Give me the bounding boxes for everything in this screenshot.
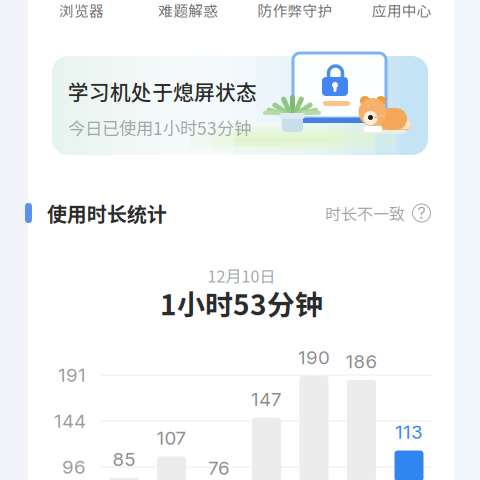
button[interactable]: 防作弊守护 bbox=[241, 0, 348, 21]
staticText: 147 bbox=[251, 388, 282, 410]
staticText: ? bbox=[417, 203, 425, 223]
staticText: 85 bbox=[112, 448, 135, 470]
staticText: 191 bbox=[58, 364, 86, 386]
staticText: 144 bbox=[54, 410, 86, 432]
staticText: 浏览器 bbox=[59, 0, 104, 21]
button[interactable]: 时长不一致 bbox=[325, 201, 431, 225]
button[interactable]: 应用中心 bbox=[348, 0, 455, 21]
staticText: 防作弊守护 bbox=[257, 0, 332, 21]
staticText: 1小时53分钟 bbox=[160, 283, 323, 323]
button[interactable]: 难题解惑 bbox=[135, 0, 242, 21]
staticText: 今日已使用1小时53分钟 bbox=[68, 115, 251, 140]
staticText: 96 bbox=[62, 456, 86, 478]
staticText: 186 bbox=[345, 350, 377, 373]
staticText: 难题解惑 bbox=[158, 0, 218, 21]
staticText: 应用中心 bbox=[372, 0, 432, 21]
staticText: 76 bbox=[208, 457, 230, 479]
staticText: 107 bbox=[156, 427, 186, 449]
staticText: 113 bbox=[395, 421, 423, 443]
staticText: 12月10日 bbox=[207, 264, 275, 287]
staticText: 190 bbox=[298, 346, 330, 369]
staticText: 使用时长统计 bbox=[47, 198, 167, 227]
button[interactable]: 浏览器 bbox=[28, 0, 135, 21]
staticText: 时长不一致 bbox=[325, 201, 405, 225]
staticText: 学习机处于熄屏状态 bbox=[68, 76, 257, 106]
